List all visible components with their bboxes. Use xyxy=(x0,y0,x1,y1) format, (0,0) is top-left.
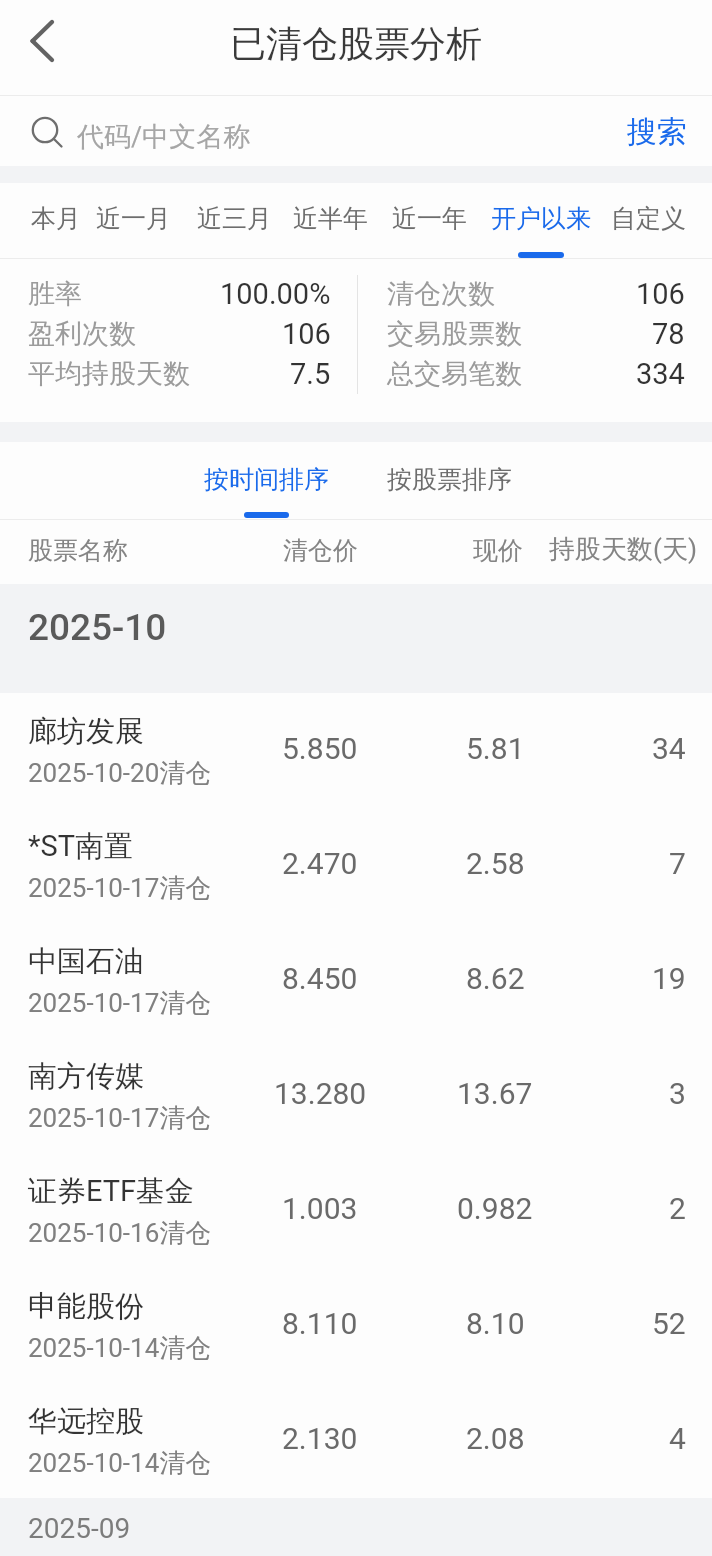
staticText: 8.62 xyxy=(466,961,525,996)
staticText: 清仓价 xyxy=(283,535,358,566)
button[interactable]: 按股票排序 xyxy=(383,442,515,519)
staticText: *ST南置 xyxy=(28,828,134,865)
button[interactable]: 申能股份 xyxy=(0,1268,712,1383)
button[interactable]: 本月 xyxy=(28,183,84,258)
staticText: 廊坊发展 xyxy=(28,713,144,750)
staticText: 2025-10-17清仓 xyxy=(28,1102,212,1135)
staticText: 8.110 xyxy=(282,1306,358,1341)
staticText: 2.08 xyxy=(466,1421,525,1456)
staticText: 2025-10-17清仓 xyxy=(28,987,212,1020)
button[interactable]: 中国石油 xyxy=(0,923,712,1038)
staticText: 清仓次数 xyxy=(387,277,495,311)
staticText: 近一年 xyxy=(392,203,467,234)
staticText: 5.81 xyxy=(466,731,525,766)
staticText: 7 xyxy=(669,846,686,881)
staticText: 代码/中文名称 xyxy=(77,120,251,154)
button[interactable]: 近一年 xyxy=(388,183,470,258)
staticText: 2.130 xyxy=(282,1421,358,1456)
staticText: 胜率 xyxy=(28,277,82,311)
button[interactable]: Back xyxy=(0,0,72,95)
staticText: 2025-10-20清仓 xyxy=(28,757,212,790)
staticText: 8.450 xyxy=(282,961,358,996)
staticText: 2025-10-17清仓 xyxy=(28,872,212,905)
staticText: 7.5 xyxy=(290,357,331,391)
staticText: 2025-10-14清仓 xyxy=(28,1447,212,1480)
staticText: 13.67 xyxy=(457,1076,533,1111)
staticText: 中国石油 xyxy=(28,943,144,980)
button[interactable]: 近一月 xyxy=(92,183,174,258)
staticText: 334 xyxy=(636,357,685,391)
staticText: 盈利次数 xyxy=(28,317,136,351)
button[interactable]: 自定义 xyxy=(607,183,689,258)
button[interactable]: 证券ETF基金 xyxy=(0,1153,712,1268)
button[interactable]: 华远控股 xyxy=(0,1383,712,1498)
staticText: 2025-10-14清仓 xyxy=(28,1332,212,1365)
staticText: 2025-10 xyxy=(28,606,167,649)
staticText: 5.850 xyxy=(282,731,358,766)
staticText: 总交易笔数 xyxy=(387,357,522,391)
staticText: 4 xyxy=(669,1421,686,1456)
staticText: 0.982 xyxy=(457,1191,533,1226)
staticText: 交易股票数 xyxy=(387,317,522,351)
staticText: 开户以来 xyxy=(491,203,591,234)
staticText: 持股天数(天) xyxy=(549,533,697,566)
staticText: 2 xyxy=(669,1191,686,1226)
button[interactable]: 南方传媒 xyxy=(0,1038,712,1153)
staticText: 按时间排序 xyxy=(204,464,329,495)
staticText: 2025-09 xyxy=(28,1512,131,1545)
staticText: 近一月 xyxy=(96,203,171,234)
staticText: 南方传媒 xyxy=(28,1058,144,1095)
staticText: 13.280 xyxy=(274,1076,367,1111)
staticText: 106 xyxy=(636,277,685,311)
staticText: 52 xyxy=(652,1306,686,1341)
staticText: 34 xyxy=(652,731,686,766)
staticText: 自定义 xyxy=(611,203,686,234)
button[interactable]: 按时间排序 xyxy=(200,442,332,519)
staticText: 本月 xyxy=(31,203,81,234)
staticText: 搜索 xyxy=(627,113,687,151)
button[interactable]: 廊坊发展 xyxy=(0,693,712,808)
staticText: 已清仓股票分析 xyxy=(230,21,482,66)
staticText: 按股票排序 xyxy=(387,464,512,495)
staticText: 19 xyxy=(652,961,686,996)
staticText: 近半年 xyxy=(293,203,368,234)
button[interactable]: 近半年 xyxy=(289,183,371,258)
staticText: 近三月 xyxy=(197,203,272,234)
staticText: 106 xyxy=(282,317,331,351)
staticText: 3 xyxy=(669,1076,686,1111)
staticText: 股票名称 xyxy=(28,535,128,566)
button[interactable]: 近三月 xyxy=(193,183,275,258)
staticText: 平均持股天数 xyxy=(28,357,190,391)
button[interactable]: *ST南置 xyxy=(0,808,712,923)
button[interactable]: 搜索 xyxy=(599,96,712,166)
button[interactable]: 开户以来 xyxy=(485,183,597,258)
staticText: 证券ETF基金 xyxy=(28,1173,195,1210)
staticText: 78 xyxy=(652,317,685,351)
staticText: 1.003 xyxy=(282,1191,358,1226)
staticText: 2.470 xyxy=(282,846,358,881)
staticText: 申能股份 xyxy=(28,1288,144,1325)
staticText: 2.58 xyxy=(466,846,525,881)
staticText: 2025-10-16清仓 xyxy=(28,1217,212,1250)
staticText: 现价 xyxy=(473,535,523,566)
staticText: 8.10 xyxy=(466,1306,525,1341)
staticText: 华远控股 xyxy=(28,1403,144,1440)
staticText: 100.00% xyxy=(220,277,331,311)
